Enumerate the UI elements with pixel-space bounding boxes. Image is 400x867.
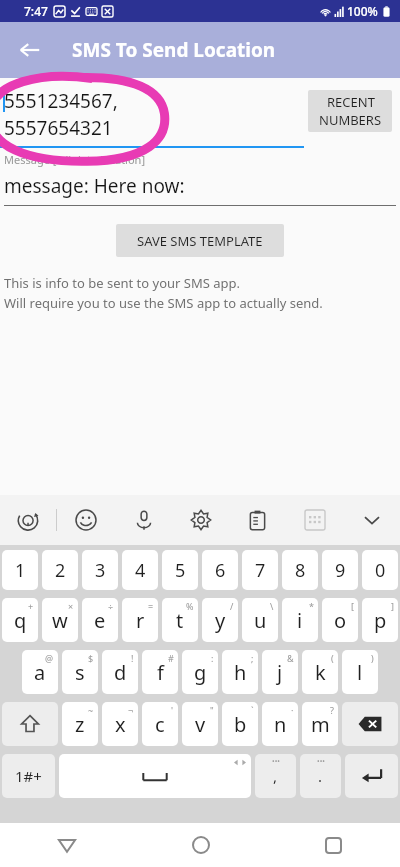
button[interactable]: v [182,702,218,746]
staticText: SMS To Send Location [72,37,276,63]
button[interactable]: Space [59,754,251,798]
button[interactable]: g [182,650,218,694]
button[interactable]: Backspace [342,702,398,746]
staticText: 7 [255,558,266,583]
staticText: x [115,711,126,738]
staticText: r [136,607,145,634]
staticText: 8 [295,558,306,583]
staticText: m [311,711,330,738]
button[interactable]: h [222,650,258,694]
staticText: ÷ [108,600,114,612]
button[interactable]: 2 [42,550,78,590]
button[interactable]: 7 [242,550,278,590]
staticText: 4 [135,558,146,583]
staticText: message: Here now: [4,173,185,199]
button[interactable]: z [62,702,98,746]
button[interactable]: c [142,702,178,746]
staticText: / [230,600,234,612]
staticText: + [28,600,34,612]
button[interactable]: , [255,754,296,798]
staticText: " [210,704,214,716]
staticText: SAVE SMS TEMPLATE [137,232,263,250]
button[interactable]: Voice input [115,495,172,545]
staticText: @ [45,652,54,664]
button[interactable]: Shift [2,702,58,746]
button[interactable]: t [162,598,198,642]
button[interactable]: 1 [2,550,38,590]
button[interactable]: i [282,598,318,642]
button[interactable]: Handwriting [286,495,343,545]
button[interactable]: 9 [322,550,358,590]
staticText: u [254,607,267,634]
button[interactable]: RECENT [308,90,392,132]
staticText: z [75,711,85,738]
button[interactable]: m [302,702,338,746]
button[interactable]: e [82,598,118,642]
button[interactable]: 4 [122,550,158,590]
button[interactable]: a [22,650,58,694]
button[interactable]: Home [134,823,267,867]
staticText: a [34,659,46,686]
button[interactable]: Clipboard [229,495,286,545]
staticText: \ [270,600,274,612]
button[interactable]: Back [10,30,50,70]
staticText: w [52,607,68,634]
button[interactable]: w [42,598,78,642]
button[interactable]: d [102,650,138,694]
staticText: ? [330,704,334,716]
staticText: = [148,600,154,612]
staticText: × [68,600,74,612]
button[interactable]: p [362,598,398,642]
button[interactable]: . [300,754,341,798]
staticText: ~ [88,704,94,716]
button[interactable]: 1#+ [2,754,55,798]
staticText: ] [391,600,394,612]
staticText: Will require you to use the SMS app to a… [4,294,323,312]
button[interactable]: n [262,702,298,746]
button[interactable]: 3 [82,550,118,590]
staticText: t [176,607,184,634]
staticText: $ [88,652,94,664]
button[interactable]: Settings [172,495,229,545]
button[interactable]: x [102,702,138,746]
staticText: This is info to be sent to your SMS app. [4,274,241,292]
staticText: y [215,607,226,634]
staticText: ¬ [128,704,134,716]
staticText: h [234,659,247,686]
staticText: ••• [317,757,325,767]
button[interactable]: k [302,650,338,694]
button[interactable]: Back [0,823,134,867]
staticText: i [297,607,303,634]
staticText: l [357,659,363,686]
button[interactable]: 5 [162,550,198,590]
staticText: * [309,600,314,612]
button[interactable]: SAVE SMS TEMPLATE [116,224,284,257]
staticText: ••• [272,757,280,767]
button[interactable]: u [242,598,278,642]
staticText: j [277,659,283,686]
staticText: 6 [215,558,226,583]
button[interactable]: b [222,702,258,746]
button[interactable]: o [322,598,358,642]
staticText: b [234,711,247,738]
button[interactable]: 8 [282,550,318,590]
button[interactable]: l [342,650,378,694]
button[interactable]: q [2,598,38,642]
button[interactable]: 6 [202,550,238,590]
staticText: k [315,659,326,686]
button[interactable]: f [142,650,178,694]
staticText: 5551234567, [4,88,118,114]
staticText: s [75,659,85,686]
button[interactable]: s [62,650,98,694]
button[interactable]: Emoji [57,495,115,545]
staticText: e [94,607,106,634]
button[interactable]: Collapse keyboard [343,495,400,545]
button[interactable]: Enter [345,754,398,798]
button[interactable]: 0 [362,550,398,590]
staticText: c [155,711,165,738]
button[interactable]: j [262,650,298,694]
button[interactable]: Recents [267,823,400,867]
button[interactable]: r [122,598,158,642]
button[interactable]: y [202,598,238,642]
button[interactable]: Search [0,495,56,545]
